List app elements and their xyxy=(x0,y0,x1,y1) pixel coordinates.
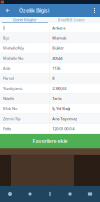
button[interactable]: Genel Bilgiler xyxy=(2,17,48,23)
staticText: Mahalle No xyxy=(3,55,23,61)
staticText: Favorilere ekle xyxy=(32,137,67,145)
button[interactable]: Bina/BB Listesi xyxy=(48,17,94,23)
staticText: Yüzölçümü xyxy=(3,86,22,91)
staticText: 2.383,63 xyxy=(52,86,66,91)
staticText: Mamak xyxy=(52,35,66,41)
staticText: Ada xyxy=(3,65,10,71)
staticText: 120 01 00 0 4 xyxy=(52,126,74,131)
staticText: 40544 xyxy=(52,55,62,61)
button[interactable]: System control xyxy=(40,186,60,202)
staticText: Bükler xyxy=(52,45,64,51)
staticText: Parsel xyxy=(3,76,14,81)
staticText: Özellik Bilgisi xyxy=(19,7,49,14)
staticText: Zemin Tip xyxy=(3,116,20,121)
button[interactable]: Favorilere ekle xyxy=(0,134,100,148)
staticText: İl xyxy=(3,25,5,30)
button[interactable]: System control xyxy=(20,186,40,202)
button[interactable]: More options xyxy=(90,4,99,17)
staticText: Ana Taşınmaz xyxy=(52,116,77,121)
staticText: Tarla xyxy=(52,96,61,101)
button[interactable]: Back xyxy=(1,4,14,17)
button[interactable]: System control xyxy=(0,186,20,202)
staticText: Nitelik xyxy=(3,96,14,101)
staticText: Genel Bilgiler xyxy=(13,17,37,22)
staticText: Mahalle/Köy xyxy=(3,45,24,51)
staticText: İlçe xyxy=(3,35,9,41)
staticText: 8 xyxy=(52,76,54,81)
staticText: İç Yol Bağı xyxy=(52,106,70,111)
staticText: Bina/BB Listesi xyxy=(57,17,84,22)
staticText: Ankara xyxy=(52,25,65,30)
button[interactable]: System control xyxy=(80,186,100,202)
staticText: 1136 xyxy=(52,65,60,71)
staticText: Blok No xyxy=(3,106,17,111)
staticText: Pafta xyxy=(3,126,11,131)
button[interactable]: System control xyxy=(60,186,80,202)
